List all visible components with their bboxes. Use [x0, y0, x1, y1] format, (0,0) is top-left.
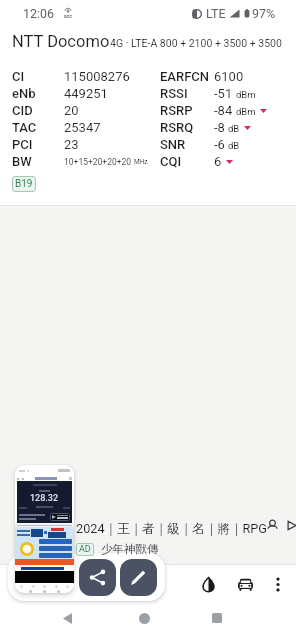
staticText: -84: [214, 103, 233, 118]
staticText: 128.32: [30, 493, 59, 504]
staticText: CQI: [160, 154, 182, 169]
staticText: 115008276: [64, 69, 130, 84]
staticText: -8: [214, 120, 225, 135]
button[interactable]: Share: [79, 559, 116, 596]
staticText: RSRP: [160, 103, 193, 118]
staticText: -6: [214, 137, 225, 152]
staticText: SNR: [160, 137, 186, 152]
button[interactable]: Drive mode: [230, 569, 260, 599]
staticText: PCI: [12, 137, 33, 152]
staticText: CID: [12, 103, 33, 118]
button[interactable]: Back: [58, 609, 76, 627]
staticText: eNb: [12, 86, 36, 101]
staticText: scc: [64, 13, 72, 19]
staticText: 20: [64, 103, 79, 118]
staticText: 97%: [252, 6, 276, 21]
button[interactable]: Recents: [208, 609, 226, 627]
staticText: dBm: [236, 89, 256, 100]
staticText: 少年神獸傳: [101, 542, 159, 556]
staticText: dB: [228, 140, 240, 151]
staticText: EARFCN: [160, 69, 210, 84]
staticText: RSRQ: [160, 120, 194, 135]
staticText: BW: [12, 154, 32, 169]
button[interactable]: More options: [263, 569, 293, 599]
staticText: 449251: [64, 86, 108, 101]
staticText: CI: [12, 69, 25, 84]
button[interactable]: Home: [135, 609, 153, 627]
staticText: 6: [214, 154, 222, 169]
staticText: TAC: [12, 120, 37, 135]
staticText: 4G · LTE-A 800 + 2100 + 3500 + 3500: [110, 37, 282, 49]
staticText: 23: [64, 137, 79, 152]
staticText: RSSI: [160, 86, 188, 101]
staticText: AD: [79, 544, 91, 555]
button[interactable]: Edit: [120, 559, 157, 596]
staticText: dBm: [236, 106, 256, 117]
staticText: 2024｜王｜者｜級｜名｜將｜RPG: [76, 521, 267, 537]
staticText: 12:06: [23, 6, 55, 21]
staticText: 10+15+20+20+20: [64, 157, 132, 167]
staticText: 6100: [214, 69, 244, 84]
staticText: 25347: [64, 120, 101, 135]
button[interactable]: Contrast: [193, 569, 223, 599]
staticText: LTE: [206, 6, 226, 21]
staticText: NTT Docomo: [12, 32, 110, 51]
staticText: -51: [214, 86, 233, 101]
staticText: MHz: [134, 158, 148, 166]
staticText: B19: [15, 178, 33, 190]
staticText: dB: [228, 123, 240, 134]
